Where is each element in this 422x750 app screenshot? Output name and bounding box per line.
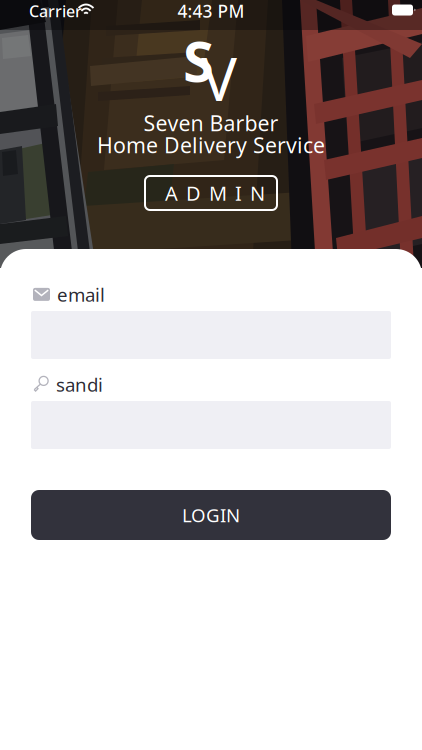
staticText: Seven Barber (143, 109, 278, 137)
staticText: Carrier (29, 0, 82, 22)
staticText: sandi (56, 372, 103, 397)
button[interactable]: ADMIN (145, 176, 277, 210)
staticText: V (201, 38, 237, 118)
staticText: LOGIN (182, 503, 240, 527)
button[interactable]: LOGIN (31, 490, 391, 540)
staticText: 4:43 PM (177, 0, 244, 22)
staticText: Home Delivery Service (97, 131, 325, 159)
staticText: email (57, 282, 105, 307)
staticText: ADMIN (165, 180, 265, 206)
staticText: S (183, 23, 214, 97)
